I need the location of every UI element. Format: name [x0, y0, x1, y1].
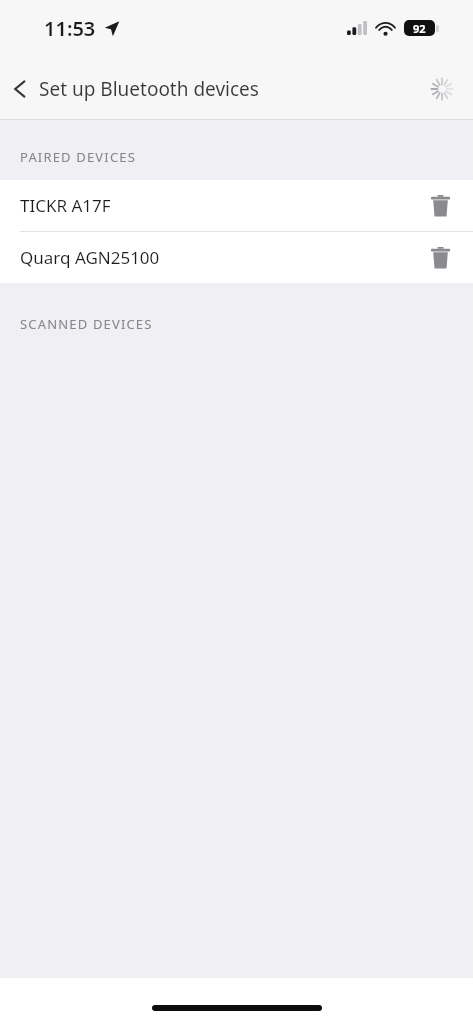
- staticText: PAIRED DEVICES: [20, 148, 136, 166]
- staticText: 11:53: [44, 15, 96, 42]
- button[interactable]: Quarq AGN25100: [0, 232, 473, 283]
- button[interactable]: Delete TICKR A17F: [426, 190, 455, 222]
- button[interactable]: Loading: [425, 72, 459, 106]
- button[interactable]: Back: [0, 66, 265, 112]
- staticText: Quarq AGN25100: [20, 246, 426, 269]
- other: Back: [10, 79, 30, 99]
- staticText: 92: [413, 21, 426, 36]
- staticText: SCANNED DEVICES: [20, 315, 153, 333]
- staticText: TICKR A17F: [20, 194, 426, 217]
- button[interactable]: TICKR A17F: [0, 180, 473, 231]
- button[interactable]: Delete Quarq AGN25100: [426, 242, 455, 274]
- staticText: Set up Bluetooth devices: [39, 76, 259, 102]
